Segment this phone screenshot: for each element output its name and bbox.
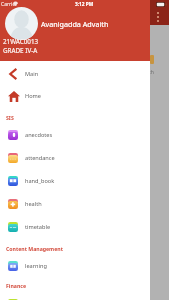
staticText: 21WAC0013 (3, 37, 39, 46)
staticText: Finance (6, 282, 27, 289)
staticText: health (25, 200, 42, 208)
staticText: Content Management (6, 245, 63, 252)
button[interactable]: Content Management (6, 242, 63, 254)
staticText: learning (25, 262, 47, 270)
staticText: GRADE IV-A (3, 46, 38, 55)
button[interactable]: health (0, 193, 150, 215)
button[interactable]: fees (0, 293, 150, 300)
staticText: Home (25, 92, 41, 100)
button[interactable]: hand_book (0, 170, 150, 192)
button[interactable]: Main (0, 63, 150, 85)
button[interactable]: Finance (6, 279, 27, 291)
staticText: SIS (6, 114, 14, 121)
staticText: Avanigadda Advaith (41, 19, 109, 29)
staticText: hand_book (25, 177, 55, 185)
staticText: timetable (25, 223, 51, 231)
staticText: th (149, 69, 154, 76)
staticText: anecdotes (25, 131, 53, 139)
staticText: Main (25, 70, 39, 78)
staticText: 3:12 PM (75, 1, 94, 8)
staticText: Carrier (1, 1, 18, 8)
button[interactable]: Home (0, 85, 150, 107)
button[interactable]: More options (152, 10, 163, 23)
button[interactable]: SIS (6, 111, 14, 123)
button[interactable]: learning (0, 255, 150, 277)
staticText: attendance (25, 154, 55, 162)
button[interactable]: attendance (0, 147, 150, 169)
button[interactable]: anecdotes (0, 124, 150, 146)
button[interactable]: timetable (0, 216, 150, 238)
